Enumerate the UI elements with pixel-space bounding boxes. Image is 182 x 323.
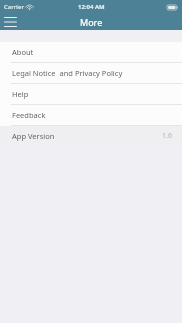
button[interactable]: Feedback — [0, 105, 182, 126]
staticText: 1.6 — [162, 131, 172, 141]
button[interactable]: App Version — [0, 126, 182, 146]
staticText: Help — [12, 89, 29, 99]
staticText: Feedback — [12, 110, 46, 120]
staticText: About — [12, 47, 34, 57]
staticText: 12:04 AM — [78, 3, 105, 11]
button[interactable]: Help — [0, 84, 182, 105]
staticText: Carrier — [4, 3, 24, 11]
button[interactable]: Menu — [0, 14, 20, 30]
button[interactable]: About — [0, 42, 182, 63]
staticText: Legal Notice and Privacy Policy — [12, 68, 123, 78]
staticText: App Version — [12, 131, 55, 141]
staticText: More — [80, 16, 103, 28]
button[interactable]: Legal Notice and Privacy Policy — [0, 63, 182, 84]
